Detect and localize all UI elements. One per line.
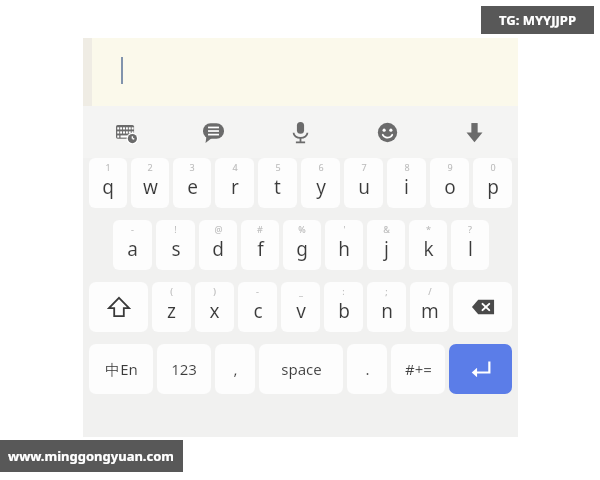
- staticText: !: [174, 223, 177, 235]
- staticText: b: [338, 298, 350, 324]
- button[interactable]: -: [238, 282, 277, 332]
- staticText: u: [358, 174, 370, 200]
- staticText: d: [212, 236, 224, 262]
- staticText: -: [256, 285, 259, 297]
- staticText: r: [231, 174, 239, 200]
- button[interactable]: %: [283, 220, 321, 270]
- staticText: y: [316, 174, 326, 200]
- button[interactable]: Keyboard settings: [83, 106, 170, 158]
- staticText: ?: [468, 223, 472, 235]
- button[interactable]: (: [152, 282, 191, 332]
- staticText: 7: [361, 161, 367, 173]
- button[interactable]: -: [113, 220, 152, 270]
- staticText: (: [170, 285, 173, 297]
- staticText: x: [209, 298, 220, 324]
- staticText: i: [404, 174, 409, 200]
- staticText: &: [383, 223, 390, 235]
- staticText: ': [343, 223, 346, 235]
- staticText: c: [253, 298, 263, 324]
- staticText: j: [384, 236, 389, 262]
- button[interactable]: 8: [387, 158, 426, 208]
- button[interactable]: Voice input: [257, 106, 344, 158]
- staticText: .: [365, 359, 370, 379]
- staticText: ): [213, 285, 216, 297]
- staticText: 6: [318, 161, 324, 173]
- staticText: /: [428, 285, 432, 297]
- button[interactable]: 6: [301, 158, 340, 208]
- staticText: s: [171, 236, 181, 262]
- button[interactable]: ): [195, 282, 234, 332]
- staticText: h: [338, 236, 350, 262]
- staticText: :: [342, 285, 345, 297]
- button[interactable]: /: [410, 282, 449, 332]
- staticText: -: [131, 223, 134, 235]
- staticText: 2: [147, 161, 153, 173]
- staticText: p: [487, 174, 499, 200]
- staticText: www.minggongyuan.com: [8, 447, 175, 465]
- button[interactable]: Messages: [170, 106, 257, 158]
- button[interactable]: .: [347, 344, 387, 394]
- button[interactable]: 5: [258, 158, 297, 208]
- button[interactable]: 123: [157, 344, 211, 394]
- staticText: v: [296, 298, 306, 324]
- button[interactable]: ;: [367, 282, 406, 332]
- button[interactable]: 0: [473, 158, 512, 208]
- button[interactable]: Shift: [89, 282, 148, 332]
- button[interactable]: 3: [173, 158, 211, 208]
- staticText: q: [102, 174, 114, 200]
- button[interactable]: 2: [131, 158, 169, 208]
- staticText: %: [298, 223, 306, 235]
- staticText: 中En: [105, 359, 138, 379]
- button[interactable]: &: [367, 220, 405, 270]
- staticText: l: [468, 236, 473, 262]
- staticText: m: [421, 298, 439, 324]
- button[interactable]: Hide keyboard: [431, 106, 518, 158]
- staticText: z: [167, 298, 176, 324]
- staticText: 123: [171, 359, 197, 379]
- staticText: f: [257, 236, 264, 262]
- button[interactable]: Backspace: [453, 282, 512, 332]
- staticText: _: [299, 285, 303, 297]
- button[interactable]: !: [156, 220, 195, 270]
- button[interactable]: ,: [215, 344, 255, 394]
- button[interactable]: *: [409, 220, 447, 270]
- button[interactable]: @: [199, 220, 237, 270]
- button[interactable]: ?: [451, 220, 489, 270]
- staticText: o: [444, 174, 456, 200]
- staticText: 5: [275, 161, 281, 173]
- staticText: #: [257, 223, 263, 235]
- staticText: 1: [105, 161, 111, 173]
- button[interactable]: 1: [89, 158, 127, 208]
- button[interactable]: 7: [344, 158, 383, 208]
- button[interactable]: 9: [430, 158, 469, 208]
- button[interactable]: #+=: [391, 344, 445, 394]
- staticText: TG: MYYJJPP: [499, 11, 576, 29]
- staticText: *: [426, 223, 431, 235]
- staticText: @: [214, 223, 223, 235]
- button[interactable]: Emoji: [344, 106, 431, 158]
- button[interactable]: space: [259, 344, 343, 394]
- button[interactable]: 中En: [89, 344, 153, 394]
- staticText: w: [143, 174, 158, 200]
- button[interactable]: ': [325, 220, 363, 270]
- button[interactable]: 4: [215, 158, 254, 208]
- button[interactable]: #: [241, 220, 279, 270]
- staticText: n: [381, 298, 393, 324]
- staticText: a: [127, 236, 138, 262]
- staticText: 8: [404, 161, 410, 173]
- staticText: 9: [447, 161, 453, 173]
- staticText: ;: [385, 285, 388, 297]
- staticText: e: [187, 174, 198, 200]
- staticText: #+=: [405, 359, 432, 379]
- staticText: 3: [189, 161, 195, 173]
- staticText: 0: [490, 161, 496, 173]
- button[interactable]: :: [324, 282, 363, 332]
- button[interactable]: _: [281, 282, 320, 332]
- button[interactable]: Enter: [449, 344, 512, 394]
- staticText: t: [274, 174, 281, 200]
- staticText: 4: [232, 161, 238, 173]
- staticText: space: [281, 359, 322, 379]
- staticText: g: [296, 236, 308, 262]
- staticText: ,: [233, 359, 238, 379]
- staticText: k: [423, 236, 434, 262]
